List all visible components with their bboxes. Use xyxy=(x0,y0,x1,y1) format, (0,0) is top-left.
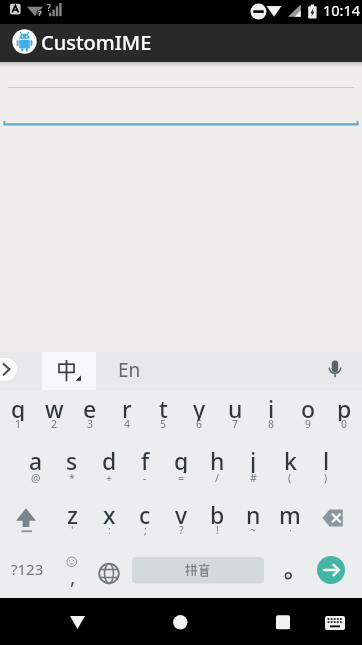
button[interactable] xyxy=(317,556,345,584)
staticText: a xyxy=(29,445,43,473)
staticText: ~ xyxy=(250,523,257,537)
button[interactable] xyxy=(315,605,357,640)
staticText: 10:14 xyxy=(323,0,361,18)
staticText: v xyxy=(175,499,188,527)
staticText: , xyxy=(70,563,76,590)
button[interactable]: c xyxy=(127,496,163,549)
staticText: o xyxy=(301,393,316,421)
button[interactable] xyxy=(0,358,18,381)
staticText: w xyxy=(45,393,64,421)
button[interactable] xyxy=(4,106,358,132)
staticText: + xyxy=(106,471,113,485)
staticText: 1 xyxy=(15,417,22,431)
staticText: x xyxy=(103,499,116,527)
button[interactable]: i xyxy=(253,390,289,443)
button[interactable] xyxy=(270,549,306,598)
button[interactable]: a xyxy=(18,443,54,496)
button[interactable]: v xyxy=(163,496,199,549)
button[interactable]: s xyxy=(54,443,90,496)
button[interactable]: g xyxy=(163,443,199,496)
staticText: / xyxy=(215,471,219,485)
staticText: b xyxy=(210,499,225,527)
staticText: ) xyxy=(324,471,328,485)
staticText: ? xyxy=(179,523,184,537)
button[interactable]: f xyxy=(127,443,163,496)
staticText: c xyxy=(139,499,151,527)
staticText: t xyxy=(159,393,168,421)
staticText: n xyxy=(246,499,261,527)
staticText: k xyxy=(284,445,297,473)
button[interactable]: , xyxy=(58,561,88,591)
staticText: # xyxy=(250,471,257,485)
staticText: e xyxy=(83,393,97,421)
staticText: j xyxy=(250,445,257,473)
button[interactable]: u xyxy=(217,390,253,443)
staticText: 5 xyxy=(160,417,167,431)
button[interactable] xyxy=(318,352,358,390)
staticText: @ xyxy=(31,471,41,485)
staticText: CustomIME xyxy=(41,29,152,54)
button[interactable] xyxy=(55,605,100,640)
staticText: ( xyxy=(288,471,292,485)
staticText: ; xyxy=(144,523,147,537)
staticText: - xyxy=(143,471,147,485)
button[interactable] xyxy=(42,352,96,390)
staticText: 3 xyxy=(87,417,94,431)
button[interactable]: o xyxy=(290,390,326,443)
staticText: q xyxy=(11,393,26,421)
button[interactable]: ?123 xyxy=(0,554,54,584)
button[interactable]: e xyxy=(72,390,108,443)
staticText: ?123 xyxy=(11,559,44,579)
button[interactable] xyxy=(0,496,54,549)
button[interactable]: k xyxy=(272,443,308,496)
button[interactable] xyxy=(132,557,264,584)
button[interactable]: n xyxy=(235,496,271,549)
button[interactable]: w xyxy=(36,390,72,443)
button[interactable]: t xyxy=(145,390,181,443)
button[interactable]: d xyxy=(91,443,127,496)
staticText: i xyxy=(268,393,275,421)
staticText: 9 xyxy=(305,417,312,431)
staticText: f xyxy=(141,445,150,473)
button[interactable]: q xyxy=(0,390,36,443)
staticText: p xyxy=(337,393,352,421)
staticText: r xyxy=(122,393,132,421)
staticText: s xyxy=(66,445,78,473)
staticText: ! xyxy=(216,523,219,537)
staticText: · xyxy=(289,523,292,537)
staticText: z xyxy=(67,499,78,527)
staticText: u xyxy=(228,393,243,421)
staticText: ' xyxy=(71,523,74,537)
staticText: 6 xyxy=(196,417,203,431)
button[interactable]: l xyxy=(308,443,344,496)
staticText: m xyxy=(279,499,301,527)
staticText: 0 xyxy=(341,417,348,431)
staticText: d xyxy=(102,445,117,473)
button[interactable] xyxy=(308,496,362,549)
button[interactable]: r xyxy=(109,390,145,443)
staticText: l xyxy=(323,445,330,473)
button[interactable]: En xyxy=(99,355,159,385)
staticText: ? xyxy=(47,2,51,14)
staticText: 4 xyxy=(124,417,131,431)
button[interactable] xyxy=(88,549,126,598)
button[interactable]: b xyxy=(199,496,235,549)
button[interactable] xyxy=(158,605,203,640)
button[interactable]: j xyxy=(235,443,271,496)
button[interactable] xyxy=(4,70,358,96)
button[interactable]: x xyxy=(91,496,127,549)
button[interactable]: m xyxy=(272,496,308,549)
staticText: 7 xyxy=(232,417,239,431)
button[interactable]: z xyxy=(54,496,90,549)
staticText: g xyxy=(174,445,189,473)
button[interactable]: p xyxy=(326,390,362,443)
button[interactable]: y xyxy=(181,390,217,443)
staticText: : xyxy=(108,523,111,537)
staticText: En xyxy=(118,357,141,383)
staticText: * xyxy=(69,471,75,485)
staticText: 2 xyxy=(51,417,58,431)
staticText: 8 xyxy=(268,417,275,431)
staticText: h xyxy=(210,445,225,473)
button[interactable] xyxy=(261,605,306,640)
button[interactable]: h xyxy=(199,443,235,496)
